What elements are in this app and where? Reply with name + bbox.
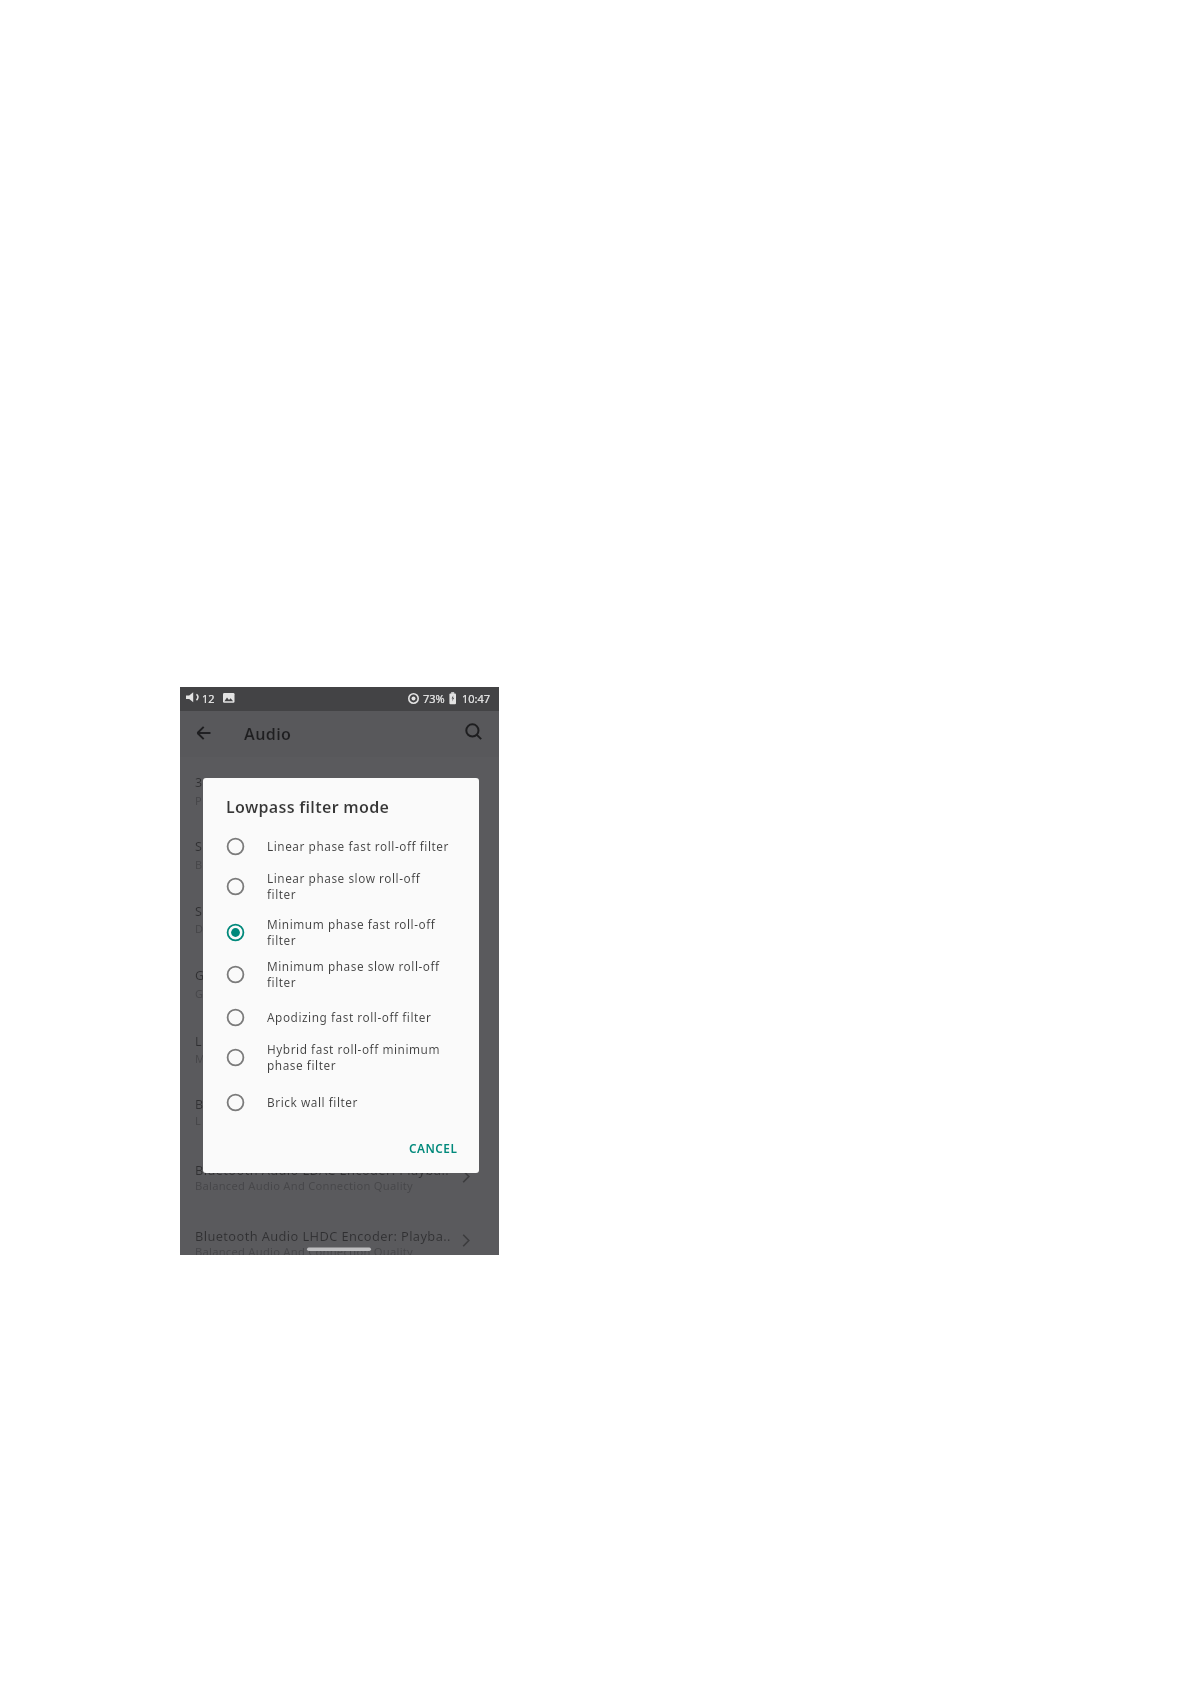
staticText: B	[195, 857, 203, 872]
staticText: Bluetooth Audio LHDC Encoder: Playba..	[195, 1227, 451, 1244]
button[interactable]: Minimum phase slow roll-off filter	[213, 952, 469, 996]
staticText: 10:47	[462, 691, 491, 706]
staticText: Balanced Audio And Connection Quality	[195, 1178, 414, 1193]
staticText: Hybrid fast roll-off minimum phase filte…	[267, 1041, 441, 1073]
staticText: S	[195, 838, 202, 855]
staticText: CANCEL	[409, 1140, 458, 1156]
staticText: S	[195, 903, 202, 920]
button[interactable]	[190, 719, 218, 747]
staticText: L	[195, 1033, 202, 1050]
staticText: G	[195, 967, 205, 984]
staticText: G	[195, 986, 204, 1001]
staticText: Apodizing fast roll-off filter	[267, 1009, 432, 1025]
staticText: Bluetooth Audio LDAC Encoder: Playba..	[195, 1161, 450, 1178]
staticText: Audio	[244, 723, 292, 745]
button[interactable]: Linear phase slow roll-off filter	[213, 864, 469, 908]
staticText: L	[195, 1113, 201, 1128]
staticText: Linear phase slow roll-off filter	[267, 870, 421, 902]
button[interactable]	[460, 718, 488, 746]
staticText: Balanced Audio And Connection Quality	[195, 1244, 414, 1255]
button[interactable]	[180, 1212, 499, 1255]
staticText: D	[195, 921, 204, 936]
staticText: 73%	[423, 691, 445, 706]
staticText: P	[195, 793, 202, 808]
staticText: Linear phase fast roll-off filter	[267, 838, 449, 854]
button[interactable]: Apodizing fast roll-off filter	[213, 999, 469, 1035]
button[interactable]: Hybrid fast roll-off minimum phase filte…	[213, 1035, 469, 1079]
staticText: Minimum phase slow roll-off filter	[267, 958, 440, 990]
staticText: M	[195, 1051, 205, 1066]
button[interactable]: Minimum phase fast roll-off filter	[213, 910, 469, 954]
button[interactable]: Brick wall filter	[213, 1084, 469, 1120]
button[interactable]	[180, 1149, 499, 1201]
button[interactable]: Linear phase fast roll-off filter	[213, 828, 469, 864]
staticText: B	[195, 1096, 204, 1113]
staticText: 12	[202, 691, 215, 706]
staticText: Lowpass filter mode	[226, 796, 390, 818]
staticText: 3	[195, 774, 203, 791]
staticText: Minimum phase fast roll-off filter	[267, 916, 436, 948]
button[interactable]: CANCEL	[399, 1133, 467, 1163]
staticText: Brick wall filter	[267, 1094, 358, 1110]
